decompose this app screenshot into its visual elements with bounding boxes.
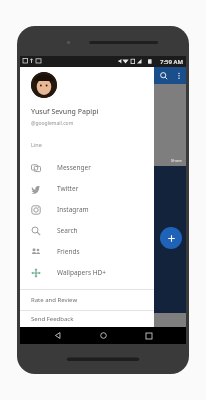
staticText: Search: [57, 226, 78, 235]
button[interactable]: Back: [49, 327, 66, 344]
button[interactable]: Search: [156, 68, 172, 84]
button[interactable]: Post: [33, 138, 53, 148]
staticText: More: [28, 88, 41, 95]
button[interactable]: Twitter: [20, 178, 154, 199]
button[interactable]: Messenger: [20, 157, 154, 178]
staticText: @googlemail.com: [31, 120, 74, 127]
button[interactable]: Profile photo: [31, 72, 57, 98]
staticText: Friends: [57, 247, 80, 256]
button[interactable]: Add: [160, 227, 182, 249]
button[interactable]: Home: [95, 327, 112, 344]
staticText: bet: [22, 216, 47, 238]
staticText: Rate and Review: [31, 296, 78, 304]
button[interactable]: Send Feedback: [20, 311, 154, 327]
staticText: Share: [171, 158, 182, 163]
staticText: Twitter: [57, 184, 79, 193]
button[interactable]: Search: [20, 220, 154, 241]
staticText: Wallpapers HD+: [57, 268, 106, 277]
staticText: 7:59 AM: [160, 58, 183, 66]
staticText: ra: [22, 194, 38, 216]
staticText: Line: [31, 141, 42, 148]
button[interactable]: Wallpapers HD+: [20, 262, 154, 283]
staticText: Yusuf Sevung Papipi: [31, 107, 99, 117]
staticText: Post: [38, 140, 49, 147]
button[interactable]: Rate and Review: [20, 290, 154, 310]
staticText: Send Feedback: [31, 315, 74, 323]
button[interactable]: Instagram: [20, 199, 154, 220]
staticText: Instagram: [57, 205, 89, 214]
button[interactable]: Recent apps: [140, 327, 157, 344]
button[interactable]: Friends: [20, 241, 154, 262]
staticText: Messenger: [57, 163, 91, 172]
button[interactable]: More options: [172, 69, 186, 83]
